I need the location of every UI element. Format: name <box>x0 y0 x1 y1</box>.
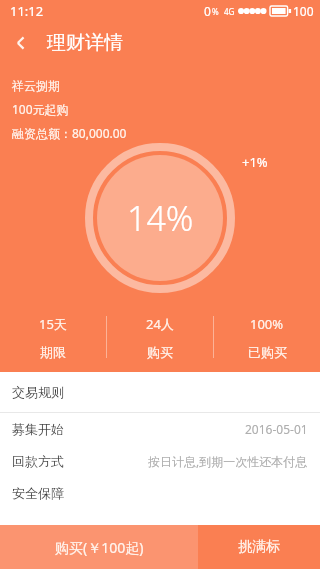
staticText: 2016-05-01 <box>245 421 308 437</box>
button[interactable]: 交易规则 <box>0 372 320 412</box>
staticText: 募集开始 <box>12 421 64 437</box>
button[interactable]: 回款方式 <box>0 445 320 477</box>
staticText: 理财详情 <box>47 31 123 55</box>
button[interactable]: 挑满标 <box>198 525 320 569</box>
staticText: 购买(￥100起) <box>55 538 144 557</box>
staticText: 14% <box>127 195 194 241</box>
staticText: 按日计息,到期一次性还本付息 <box>148 453 308 469</box>
staticText: 交易规则 <box>12 384 64 400</box>
button[interactable]: 募集开始 <box>0 413 320 445</box>
staticText: 祥云捌期 <box>12 78 60 93</box>
staticText: 100元起购 <box>12 101 69 117</box>
button[interactable]: Back <box>0 22 42 64</box>
staticText: 挑满标 <box>238 538 280 556</box>
staticText: 0 <box>204 3 211 19</box>
staticText: 购买 <box>147 344 173 360</box>
staticText: 100% <box>250 315 284 333</box>
staticText: 4G <box>224 6 235 17</box>
button[interactable]: 安全保障 <box>0 477 320 509</box>
staticText: 安全保障 <box>12 485 64 501</box>
staticText: 已购买 <box>248 344 287 360</box>
staticText: 期限 <box>40 344 66 360</box>
staticText: 融资总额：80,000.00 <box>12 125 127 141</box>
button[interactable]: 购买(￥100起) <box>0 525 198 569</box>
staticText: 15天 <box>39 315 67 333</box>
staticText: +1% <box>242 153 268 171</box>
staticText: 100 <box>293 3 314 19</box>
staticText: % <box>212 6 219 17</box>
staticText: 回款方式 <box>12 453 64 469</box>
staticText: 11:12 <box>10 2 44 20</box>
staticText: 24人 <box>146 315 174 333</box>
